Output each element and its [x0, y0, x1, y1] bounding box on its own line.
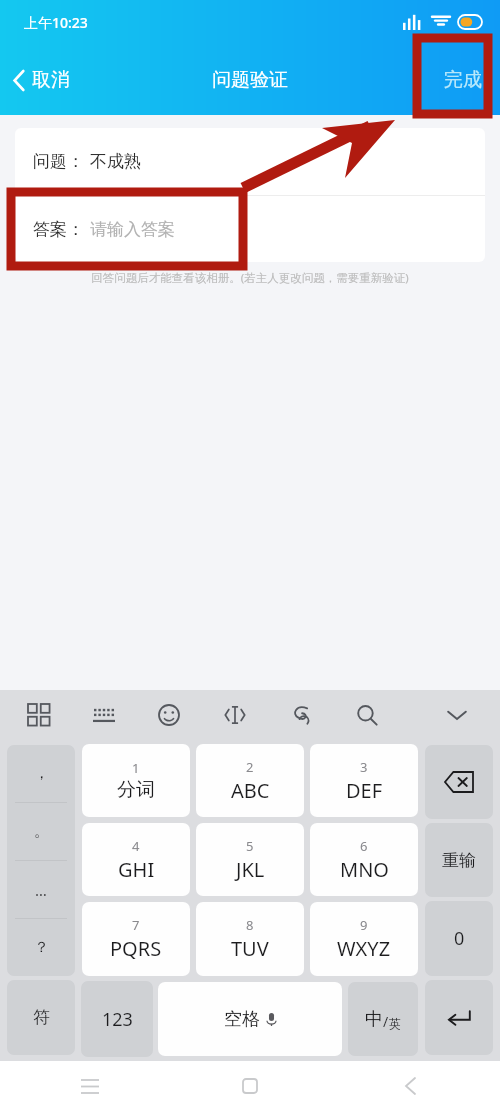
- button[interactable]: Back: [390, 1066, 430, 1106]
- staticText: 上午10:23: [24, 13, 88, 32]
- button[interactable]: Clipboard: [282, 696, 320, 734]
- staticText: MNO: [340, 856, 389, 883]
- button[interactable]: 。: [7, 803, 75, 860]
- staticText: 分词: [117, 778, 155, 802]
- staticText: 7: [132, 916, 140, 934]
- button[interactable]: Keyboard: [85, 696, 123, 734]
- button[interactable]: Recents: [70, 1066, 110, 1106]
- staticText: …: [35, 880, 47, 900]
- button[interactable]: Emoji: [150, 696, 188, 734]
- button[interactable]: 5: [196, 823, 304, 896]
- button[interactable]: Delete: [425, 745, 493, 819]
- button[interactable]: 9: [310, 902, 418, 976]
- staticText: ？: [34, 938, 49, 957]
- staticText: GHI: [118, 856, 155, 883]
- staticText: 符: [33, 1007, 50, 1028]
- staticText: 9: [360, 916, 368, 934]
- button[interactable]: Enter: [425, 980, 493, 1055]
- button[interactable]: 123: [81, 981, 153, 1057]
- staticText: 。: [34, 822, 49, 841]
- button[interactable]: 7: [82, 902, 190, 976]
- button[interactable]: 空格: [158, 982, 342, 1056]
- staticText: 答案：: [33, 219, 84, 240]
- staticText: 重输: [442, 850, 476, 871]
- staticText: WXYZ: [337, 935, 391, 962]
- button[interactable]: 重输: [425, 823, 493, 897]
- button[interactable]: 6: [310, 823, 418, 896]
- staticText: 问题验证: [212, 68, 288, 92]
- staticText: /: [383, 1012, 389, 1031]
- staticText: 2: [246, 758, 254, 776]
- staticText: PQRS: [110, 935, 162, 962]
- staticText: 英: [389, 1016, 401, 1031]
- button[interactable]: Search: [348, 696, 386, 734]
- staticText: 问题：: [33, 151, 84, 172]
- staticText: ABC: [231, 777, 270, 804]
- staticText: JKL: [236, 856, 265, 883]
- staticText: 0: [454, 926, 465, 951]
- staticText: 空格: [224, 1008, 260, 1031]
- staticText: 回答问题后才能查看该相册。(若主人更改问题，需要重新验证): [0, 270, 500, 286]
- button[interactable]: 完成: [426, 56, 500, 104]
- button[interactable]: 0: [425, 901, 493, 976]
- staticText: 不成熟: [90, 151, 141, 172]
- button[interactable]: ，: [7, 745, 75, 802]
- staticText: 4: [132, 837, 140, 855]
- button[interactable]: Home: [230, 1066, 270, 1106]
- button[interactable]: 1: [82, 744, 190, 817]
- staticText: 5: [246, 837, 254, 855]
- button[interactable]: 2: [196, 744, 304, 817]
- button[interactable]: 中: [348, 982, 418, 1056]
- staticText: 3: [360, 758, 368, 776]
- button[interactable]: 符: [7, 980, 75, 1055]
- staticText: 6: [360, 837, 368, 855]
- staticText: 请输入答案: [90, 219, 175, 240]
- staticText: ，: [34, 764, 49, 783]
- button[interactable]: 问题：: [15, 128, 485, 195]
- button[interactable]: Panel: [20, 696, 58, 734]
- staticText: 1: [132, 759, 140, 777]
- button[interactable]: Edit cursor: [216, 696, 254, 734]
- button[interactable]: 取消: [0, 58, 84, 102]
- staticText: 123: [102, 1007, 133, 1032]
- button[interactable]: 答案：: [15, 196, 485, 262]
- button[interactable]: …: [7, 861, 75, 918]
- staticText: 完成: [444, 68, 482, 92]
- staticText: DEF: [346, 777, 383, 804]
- staticText: 8: [246, 916, 254, 934]
- staticText: 取消: [32, 68, 70, 92]
- button[interactable]: 8: [196, 902, 304, 976]
- button[interactable]: 3: [310, 744, 418, 817]
- staticText: TUV: [231, 935, 269, 962]
- button[interactable]: Hide keyboard: [438, 696, 476, 734]
- button[interactable]: ？: [7, 919, 75, 976]
- staticText: 中: [365, 1008, 383, 1031]
- button[interactable]: 4: [82, 823, 190, 896]
